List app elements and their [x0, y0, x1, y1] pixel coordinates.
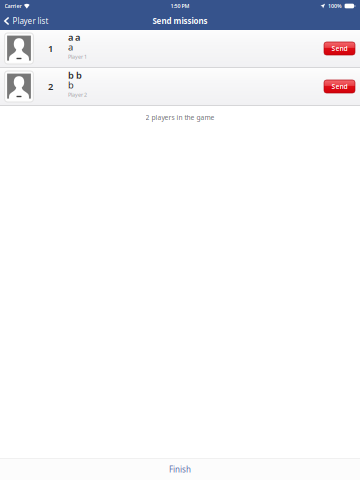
button[interactable]: Send	[324, 42, 355, 55]
staticText: b b	[68, 69, 82, 81]
staticText: Player 2	[68, 91, 87, 98]
staticText: Send	[331, 44, 347, 53]
button[interactable]: 1	[0, 30, 360, 67]
staticText: 2	[48, 80, 53, 93]
staticText: Send missions	[152, 16, 207, 26]
staticText: 1	[48, 42, 53, 55]
staticText: Player list	[12, 16, 48, 26]
staticText: b	[68, 79, 74, 91]
staticText: Player 1	[68, 53, 87, 60]
staticText: 2 players in the game	[145, 113, 214, 122]
staticText: 1:50 PM	[170, 2, 189, 10]
button[interactable]: Send	[324, 80, 355, 93]
staticText: a a	[68, 31, 80, 43]
staticText: a	[68, 41, 73, 53]
button[interactable]: Finish	[0, 459, 360, 480]
staticText: Carrier	[4, 2, 21, 10]
staticText: 100%	[328, 2, 342, 10]
button[interactable]: 2	[0, 68, 360, 105]
staticText: Finish	[169, 464, 191, 475]
button[interactable]: Player list	[0, 13, 48, 29]
staticText: Send	[331, 82, 347, 91]
